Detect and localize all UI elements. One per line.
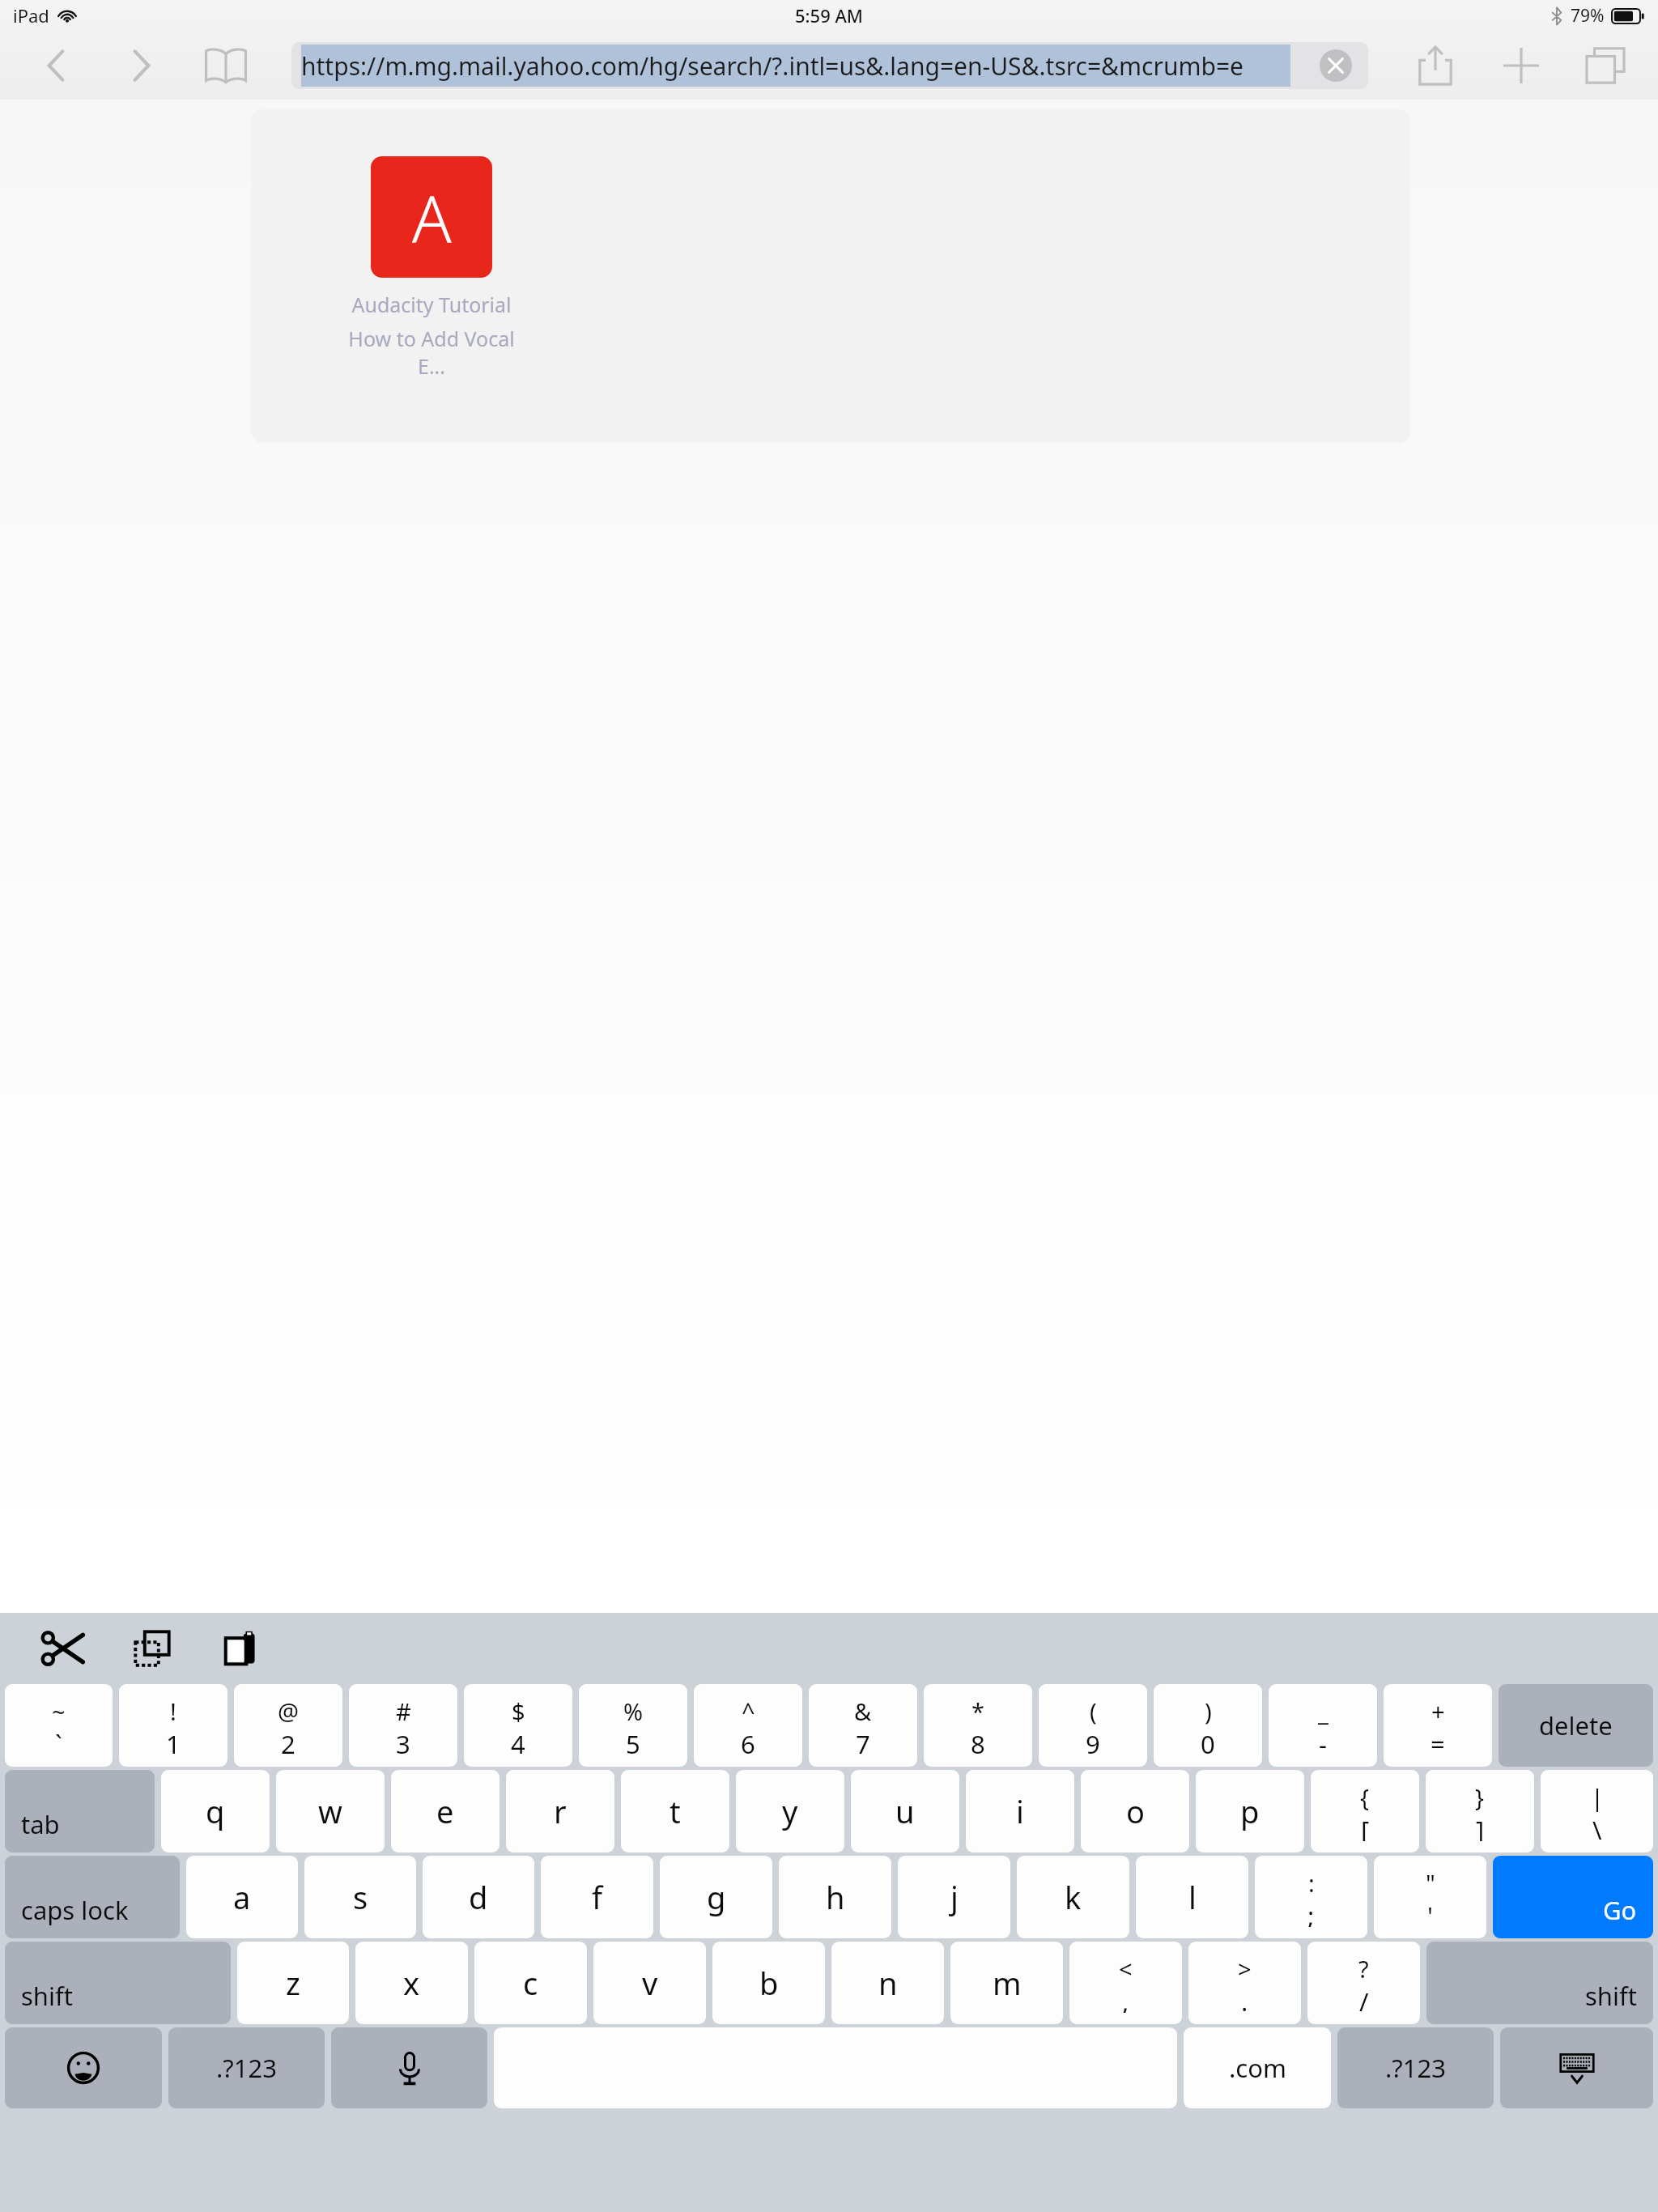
button[interactable]: % [579,1684,687,1767]
staticText: g [707,1876,726,1918]
button[interactable]: * [924,1684,1032,1767]
button[interactable]: y [736,1770,844,1853]
button[interactable]: Hide keyboard [1500,2027,1653,2108]
button[interactable]: m [950,1942,1063,2024]
button[interactable]: Go [1493,1856,1653,1938]
button[interactable] [494,2027,1177,2108]
button[interactable]: g [660,1856,772,1938]
button[interactable]: v [593,1942,706,2024]
button[interactable]: { [1311,1770,1419,1853]
button[interactable]: Dictation [331,2027,487,2108]
button[interactable]: q [161,1770,270,1853]
button[interactable]: < [1069,1942,1182,2024]
staticText: h [826,1876,845,1918]
button[interactable]: z [237,1942,349,2024]
button[interactable]: # [349,1684,457,1767]
button[interactable]: https://m.mg.mail.yahoo.com/hg/search/?.… [291,42,1368,89]
button[interactable]: ~ [5,1684,113,1767]
staticText: f [592,1876,603,1918]
button[interactable]: Show tabs [1577,37,1634,94]
staticText: 8 [971,1727,985,1755]
button[interactable]: @ [234,1684,342,1767]
staticText: c [523,1962,538,2004]
button[interactable]: ^ [694,1684,802,1767]
staticText: u [895,1790,915,1832]
button[interactable]: delete [1499,1684,1653,1767]
button[interactable]: shift [1426,1942,1653,2024]
staticText: $ [512,1695,525,1727]
button[interactable]: x [355,1942,468,2024]
staticText: shift [21,1979,73,2013]
button[interactable]: n [831,1942,944,2024]
button[interactable]: " [1374,1856,1486,1938]
button[interactable]: d [423,1856,534,1938]
button[interactable]: h [779,1856,891,1938]
button[interactable]: .?123 [1337,2027,1494,2108]
button[interactable]: w [276,1770,385,1853]
button[interactable]: } [1426,1770,1534,1853]
staticText: \ [1592,1813,1602,1841]
button[interactable]: Clear text [1318,48,1354,83]
button[interactable]: .?123 [168,2027,325,2108]
button[interactable]: > [1188,1942,1301,2024]
staticText: | [1591,1781,1604,1813]
button[interactable]: Share [1407,37,1464,94]
button[interactable]: .com [1184,2027,1331,2108]
button[interactable]: : [1255,1856,1367,1938]
button[interactable]: c [474,1942,587,2024]
button[interactable]: e [391,1770,500,1853]
button[interactable]: ( [1039,1684,1147,1767]
staticText: % [623,1695,644,1727]
staticText: Go [1603,1893,1637,1927]
staticText: 0 [1201,1727,1215,1755]
button[interactable]: i [966,1770,1074,1853]
staticText: - [1319,1727,1327,1755]
button[interactable]: Cut [32,1618,94,1679]
button[interactable]: l [1136,1856,1248,1938]
button[interactable]: $ [464,1684,572,1767]
staticText: m [993,1962,1022,2004]
button[interactable]: a [186,1856,298,1938]
button[interactable]: A [338,156,525,380]
staticText: } [1475,1781,1485,1813]
button[interactable]: Back [31,40,81,91]
button[interactable]: New tab [1493,37,1550,94]
button[interactable]: b [712,1942,825,2024]
button[interactable]: r [506,1770,614,1853]
button[interactable]: shift [5,1942,231,2024]
button[interactable]: o [1081,1770,1189,1853]
button[interactable]: k [1017,1856,1129,1938]
button[interactable]: & [809,1684,917,1767]
button[interactable]: s [304,1856,416,1938]
button[interactable]: f [541,1856,653,1938]
button[interactable]: Bookmarks [199,39,253,92]
staticText: delete [1539,1708,1613,1742]
staticText: .com [1229,2051,1286,2085]
button[interactable]: j [898,1856,1010,1938]
button[interactable]: ? [1307,1942,1420,2024]
staticText: https://m.mg.mail.yahoo.com/hg/search/?.… [301,49,1244,83]
staticText: tab [21,1807,60,1841]
button[interactable]: + [1384,1684,1492,1767]
button[interactable]: Emoji [5,2027,162,2108]
staticText: p [1240,1790,1260,1832]
button[interactable]: _ [1269,1684,1377,1767]
button[interactable]: caps lock [5,1856,180,1938]
staticText: n [878,1962,898,2004]
button[interactable]: Copy [121,1618,183,1679]
button[interactable]: ) [1154,1684,1262,1767]
button[interactable]: | [1541,1770,1653,1853]
staticText: [ [1361,1813,1370,1841]
button[interactable]: u [851,1770,959,1853]
button[interactable]: ! [119,1684,227,1767]
staticText: ] [1476,1813,1485,1841]
button[interactable]: tab [5,1770,155,1853]
button[interactable]: Forward [117,40,167,91]
button[interactable]: t [621,1770,729,1853]
staticText: , [1122,1984,1129,2013]
button[interactable]: Paste [210,1618,272,1679]
button[interactable]: p [1196,1770,1304,1853]
staticText: ` [55,1727,62,1755]
staticText: & [854,1695,872,1727]
staticText: s [353,1876,368,1918]
